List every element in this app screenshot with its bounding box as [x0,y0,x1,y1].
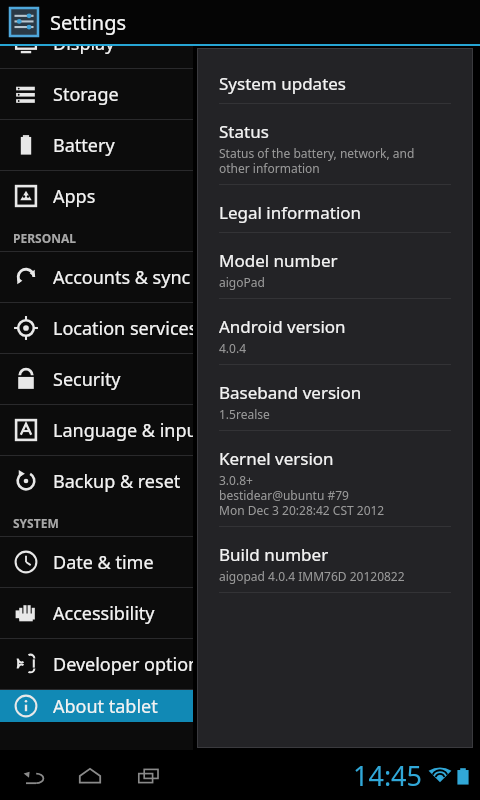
staticText: Android version [219,315,346,338]
button[interactable]: 14:45 [353,757,470,794]
staticText: Accounts & sync [53,265,191,290]
button[interactable]: Recent apps [134,761,164,791]
button[interactable]: Android version [219,313,451,364]
staticText: Kernel version [219,447,334,470]
staticText: Build number [219,543,329,566]
staticText: Security [53,367,121,392]
button[interactable]: Language & input [0,405,193,455]
button[interactable]: Accounts & sync [0,252,193,302]
staticText: About tablet [53,694,158,719]
staticText: Location services [53,316,193,341]
button[interactable]: Legal information [219,199,451,232]
staticText: Date & time [53,550,154,575]
staticText: aigopad 4.0.4 IMM76D 20120822 [219,568,405,584]
staticText: System updates [219,72,347,95]
staticText: aigoPad [219,274,265,290]
button[interactable]: About tablet [0,690,193,722]
button[interactable]: Model number [219,247,451,298]
button[interactable]: Build number [219,541,451,592]
staticText: Status of the battery, network, and othe… [219,145,415,176]
button[interactable]: Baseband version [219,379,451,430]
button[interactable]: Backup & reset [0,456,193,506]
staticText: Apps [53,184,96,209]
button[interactable]: Location services [0,303,193,353]
staticText: Accessibility [53,601,155,626]
button[interactable]: Apps [0,171,193,221]
staticText: Model number [219,249,338,272]
staticText: 4.0.4 [219,340,247,356]
button[interactable]: Home [75,761,105,791]
button[interactable]: Status [219,118,451,184]
staticText: Storage [53,82,119,107]
staticText: 3.0.8+ bestidear@ubuntu #79 Mon Dec 3 20… [219,472,385,518]
staticText: SYSTEM [13,515,59,531]
button[interactable]: Date & time [0,537,193,587]
button[interactable]: Accessibility [0,588,193,638]
staticText: Battery [53,133,115,158]
button[interactable]: Kernel version [219,445,451,526]
staticText: Legal information [219,201,362,224]
button[interactable]: Storage [0,69,193,119]
staticText: PERSONAL [13,230,76,246]
button[interactable]: Battery [0,120,193,170]
button[interactable]: System updates [219,70,451,103]
button[interactable]: Developer options [0,639,193,689]
button[interactable]: Display [0,46,193,68]
staticText: Developer options [53,652,193,677]
staticText: Settings [50,9,127,36]
staticText: Status [219,120,269,143]
staticText: 1.5realse [219,406,270,422]
staticText: Backup & reset [53,469,181,494]
button[interactable]: Security [0,354,193,404]
button[interactable]: Back [20,761,50,791]
staticText: 14:45 [353,757,423,794]
staticText: Display [53,46,115,56]
staticText: Baseband version [219,381,362,404]
staticText: Language & input [53,418,193,443]
